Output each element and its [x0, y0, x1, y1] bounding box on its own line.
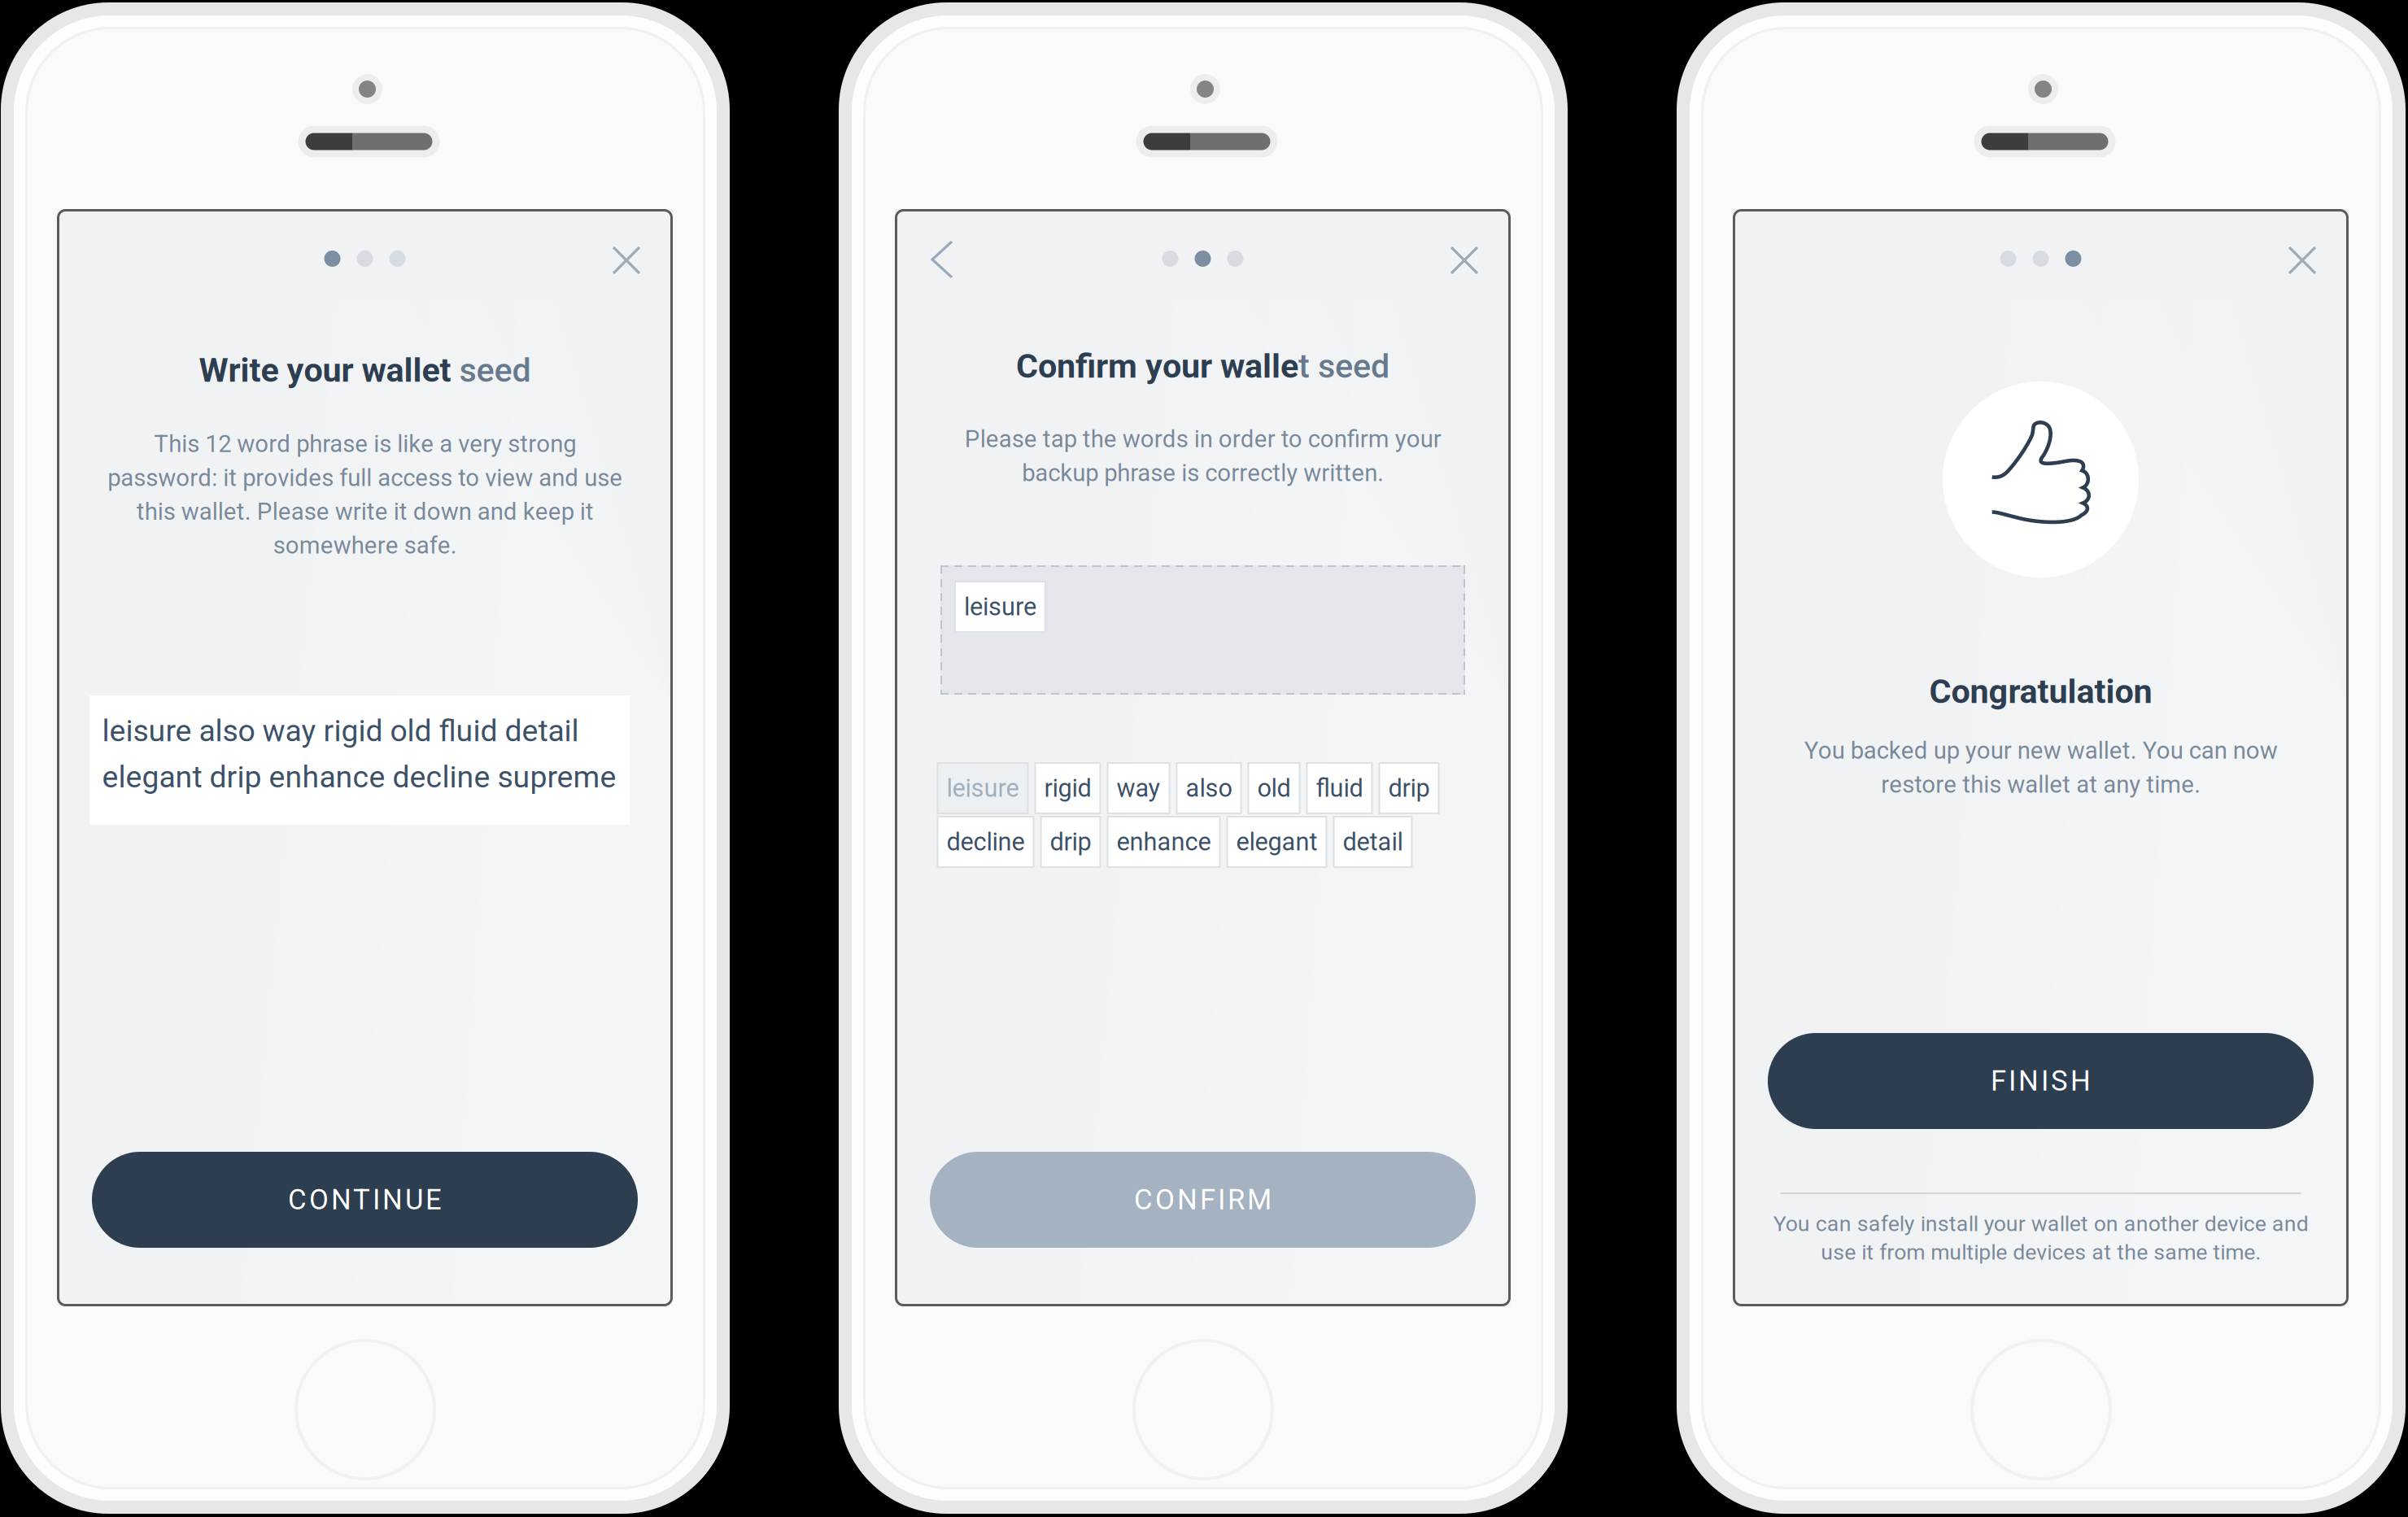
staticText: drip — [1388, 774, 1430, 803]
button[interactable]: decline — [938, 817, 1034, 867]
staticText: detail — [1343, 827, 1403, 856]
button[interactable]: leisure — [938, 763, 1028, 813]
button[interactable]: drip — [1041, 817, 1100, 867]
button[interactable]: CONFIRM — [930, 1152, 1476, 1248]
staticText: seed — [451, 351, 531, 390]
staticText: leisure — [964, 592, 1036, 621]
staticText: Congratulation — [1929, 672, 2152, 711]
staticText: also — [1186, 774, 1232, 803]
button[interactable]: way — [1108, 763, 1169, 813]
staticText: FINISH — [1991, 1065, 2091, 1098]
button[interactable]: detail — [1334, 817, 1412, 867]
button[interactable]: drip — [1379, 763, 1439, 813]
button[interactable]: also — [1177, 763, 1241, 813]
staticText: Write your wallet — [199, 351, 451, 390]
staticText: Confirm your walle — [1016, 347, 1298, 386]
staticText: elegant — [1236, 827, 1317, 856]
staticText: way — [1117, 774, 1160, 803]
staticText: enhance — [1117, 827, 1211, 856]
staticText: leisure also way rigid old fluid detail … — [102, 708, 616, 800]
button[interactable]: Close — [1438, 234, 1490, 286]
button[interactable]: Back — [921, 232, 963, 287]
button[interactable]: fluid — [1307, 763, 1372, 813]
staticText: t seed — [1298, 347, 1389, 386]
button[interactable]: CONTINUE — [92, 1152, 638, 1248]
staticText: You backed up your new wallet. You can n… — [1804, 734, 2277, 801]
staticText: CONFIRM — [1134, 1183, 1272, 1216]
button[interactable]: leisure — [955, 582, 1045, 632]
button[interactable]: enhance — [1108, 817, 1220, 867]
button[interactable]: FINISH — [1768, 1033, 2314, 1129]
staticText: leisure — [947, 774, 1019, 803]
button[interactable]: Close — [2276, 234, 2328, 286]
staticText: Please tap the words in order to confirm… — [964, 422, 1441, 490]
button[interactable]: old — [1248, 763, 1300, 813]
staticText: rigid — [1044, 774, 1091, 803]
button[interactable]: elegant — [1227, 817, 1326, 867]
staticText: decline — [947, 827, 1025, 856]
staticText: You can safely install your wallet on an… — [1773, 1210, 2308, 1266]
staticText: This 12 word phrase is like a very stron… — [107, 427, 622, 562]
button[interactable]: rigid — [1035, 763, 1100, 813]
staticText: CONTINUE — [288, 1183, 442, 1216]
staticText: drip — [1050, 827, 1091, 856]
staticText: old — [1257, 774, 1291, 803]
staticText: fluid — [1316, 774, 1363, 803]
button[interactable]: Close — [600, 234, 652, 286]
